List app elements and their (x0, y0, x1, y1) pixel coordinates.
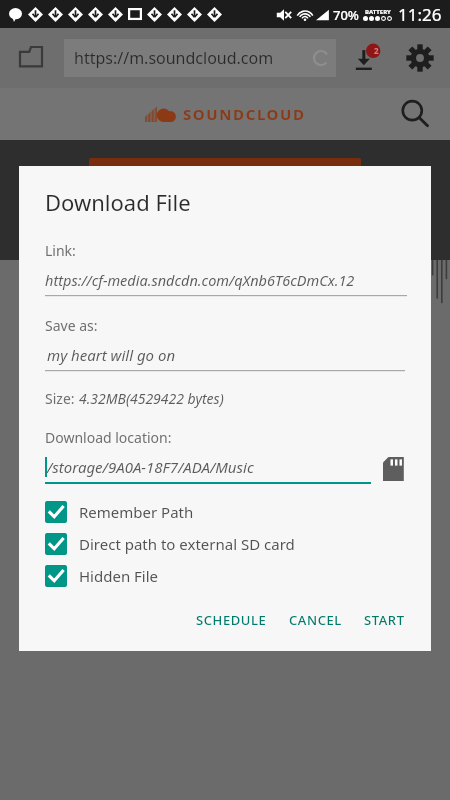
staticText: START (364, 611, 405, 629)
staticText: Save as: (45, 316, 98, 335)
button[interactable]: Downloads (348, 40, 384, 76)
staticText: BATTERY (365, 8, 391, 16)
button[interactable]: SCHEDULE (192, 603, 271, 637)
staticText: CANCEL (289, 611, 342, 629)
staticText: 4.32MB(4529422 bytes) (79, 389, 224, 408)
staticText: 70% (333, 6, 359, 24)
button[interactable]: Hidden File (45, 565, 411, 587)
staticText: Remember Path (79, 502, 194, 522)
staticText: SOUNDCLOUD (183, 104, 306, 124)
button[interactable]: Tabs (14, 41, 48, 75)
button[interactable]: CANCEL (285, 603, 346, 637)
staticText: /storage/9A0A-18F7/ADA/Music (47, 457, 254, 477)
staticText: Download File (45, 187, 191, 217)
button[interactable]: START (360, 603, 409, 637)
staticText: https://m.soundcloud.com (74, 47, 312, 69)
button[interactable]: Remember Path (45, 501, 411, 523)
button[interactable]: Search (398, 97, 432, 131)
button[interactable] (89, 158, 361, 196)
button[interactable]: Settings (402, 40, 438, 76)
staticText: 2 (374, 45, 379, 56)
staticText: Link: (45, 241, 76, 260)
staticText: SCHEDULE (196, 611, 267, 629)
button[interactable]: Choose folder (381, 455, 411, 485)
button[interactable]: Direct path to external SD card (45, 533, 411, 555)
staticText: Download location: (45, 428, 172, 447)
staticText: Size: (45, 389, 79, 408)
button[interactable]: https://m.soundcloud.com (64, 39, 336, 77)
staticText: https://cf-media.sndcdn.com/qXnb6T6cDmCx… (45, 270, 355, 290)
staticText: Direct path to external SD card (79, 534, 295, 554)
staticText: 11:26 (398, 3, 442, 26)
staticText: my heart will go on (47, 345, 176, 365)
staticText: Hidden File (79, 566, 159, 586)
